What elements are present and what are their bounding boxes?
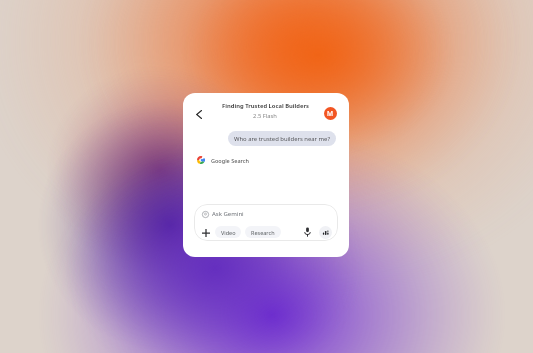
button[interactable]: Gemini Live bbox=[319, 226, 332, 239]
staticText: Ask Gemini bbox=[212, 210, 244, 218]
staticText: Who are trusted builders near me? bbox=[234, 135, 330, 143]
button[interactable]: Google Search bbox=[194, 154, 252, 166]
button[interactable]: Video bbox=[215, 226, 241, 238]
staticText: Google Search bbox=[211, 157, 249, 164]
button[interactable]: Who are trusted builders near me? bbox=[228, 131, 336, 146]
staticText: Research bbox=[251, 229, 275, 236]
staticText: M bbox=[327, 109, 334, 118]
staticText: Finding Trusted Local Builders bbox=[222, 102, 309, 110]
button[interactable]: Add attachment bbox=[198, 225, 213, 240]
staticText: 2.5 Flash bbox=[253, 112, 277, 120]
button[interactable]: Account bbox=[324, 107, 337, 120]
button[interactable]: Research bbox=[245, 226, 281, 238]
button[interactable]: Voice input bbox=[300, 225, 314, 239]
staticText: Video bbox=[221, 229, 236, 236]
button[interactable]: Back bbox=[191, 106, 207, 122]
